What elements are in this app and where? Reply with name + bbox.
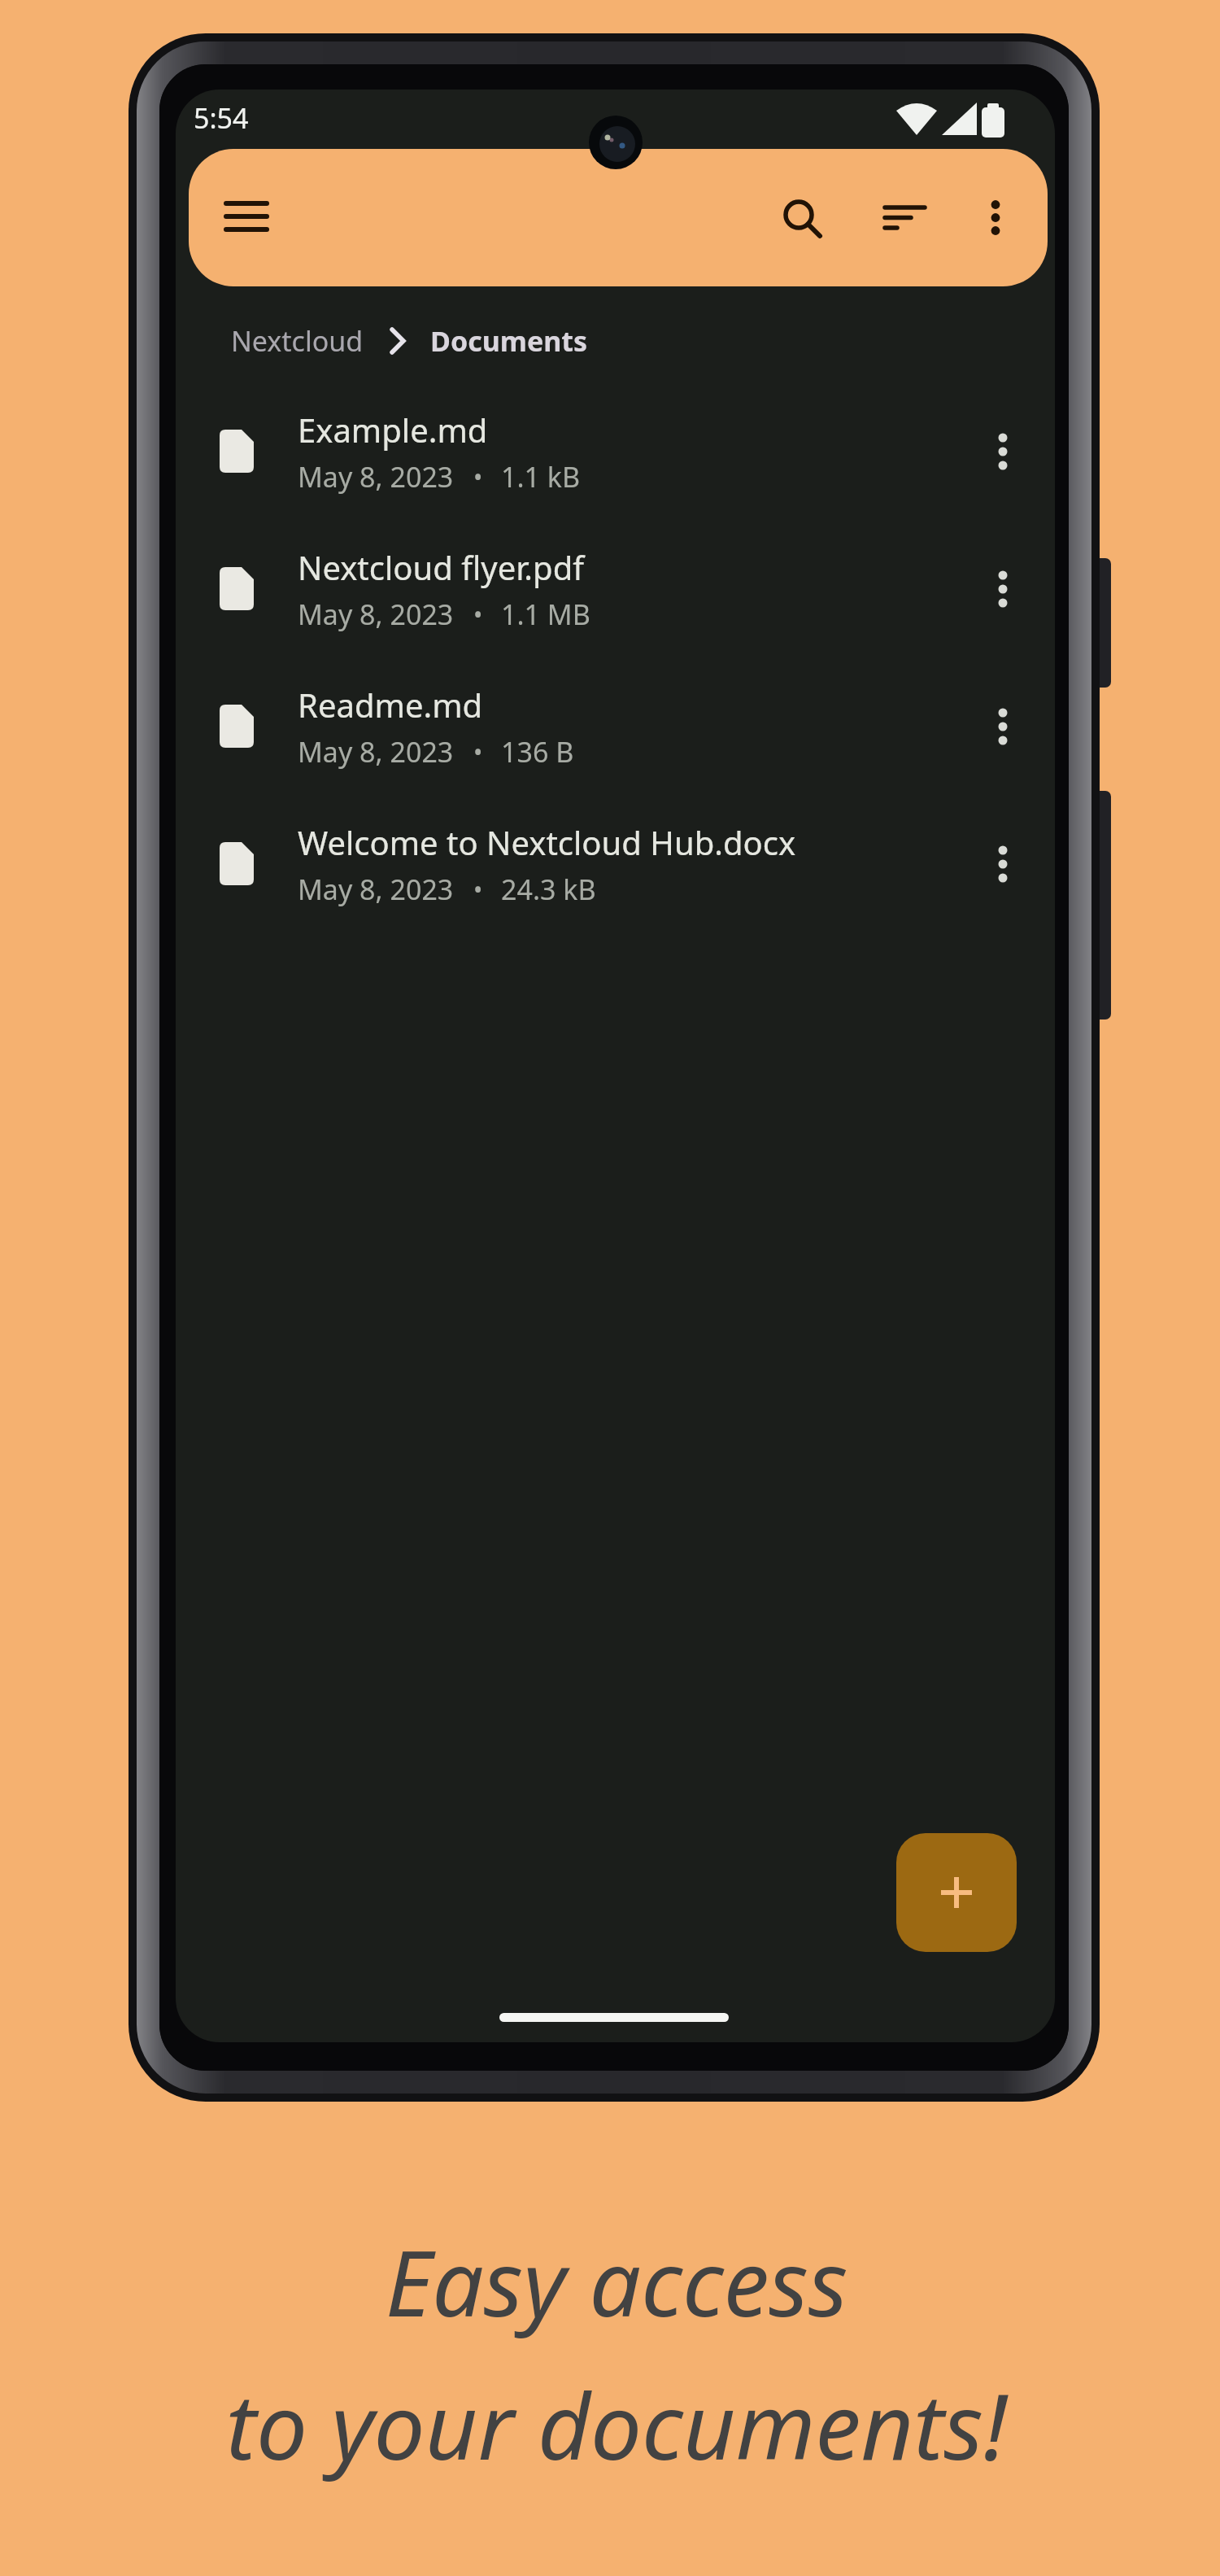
staticText: • <box>473 461 483 494</box>
staticText: Easy access <box>7 2219 1220 2343</box>
staticText: 136 B <box>501 733 574 771</box>
button[interactable] <box>207 197 286 236</box>
staticText: Example.md <box>298 408 488 452</box>
staticText: 24.3 kB <box>501 871 596 908</box>
button[interactable] <box>976 195 1015 234</box>
staticText: 5:54 <box>194 99 249 137</box>
button[interactable] <box>983 570 1022 609</box>
button[interactable]: Welcome to Nextcloud Hub.docx <box>176 795 1055 932</box>
staticText: Readme.md <box>298 683 483 727</box>
button[interactable] <box>779 195 818 234</box>
button[interactable]: Nextcloud flyer.pdf <box>176 520 1055 657</box>
button[interactable]: Readme.md <box>176 657 1055 795</box>
staticText: to your documents! <box>7 2362 1220 2486</box>
staticText: Nextcloud <box>231 322 364 360</box>
staticText: May 8, 2023 <box>298 458 454 496</box>
staticText: 1.1 MB <box>501 596 590 633</box>
button[interactable]: Documents <box>430 322 588 360</box>
staticText: • <box>473 873 483 906</box>
staticText: Welcome to Nextcloud Hub.docx <box>298 820 796 864</box>
staticText: May 8, 2023 <box>298 733 454 771</box>
button[interactable] <box>983 432 1022 471</box>
staticText: • <box>473 598 483 631</box>
button[interactable]: Nextcloud <box>231 322 364 360</box>
staticText: Documents <box>430 322 588 360</box>
staticText: May 8, 2023 <box>298 596 454 633</box>
staticText: May 8, 2023 <box>298 871 454 908</box>
button[interactable]: Example.md <box>176 382 1055 520</box>
button[interactable] <box>896 1833 1017 1952</box>
staticText: 1.1 kB <box>501 458 581 496</box>
staticText: • <box>473 736 483 769</box>
staticText: Nextcloud flyer.pdf <box>298 545 585 589</box>
button[interactable] <box>865 195 904 234</box>
button[interactable] <box>983 845 1022 884</box>
button[interactable] <box>983 707 1022 746</box>
